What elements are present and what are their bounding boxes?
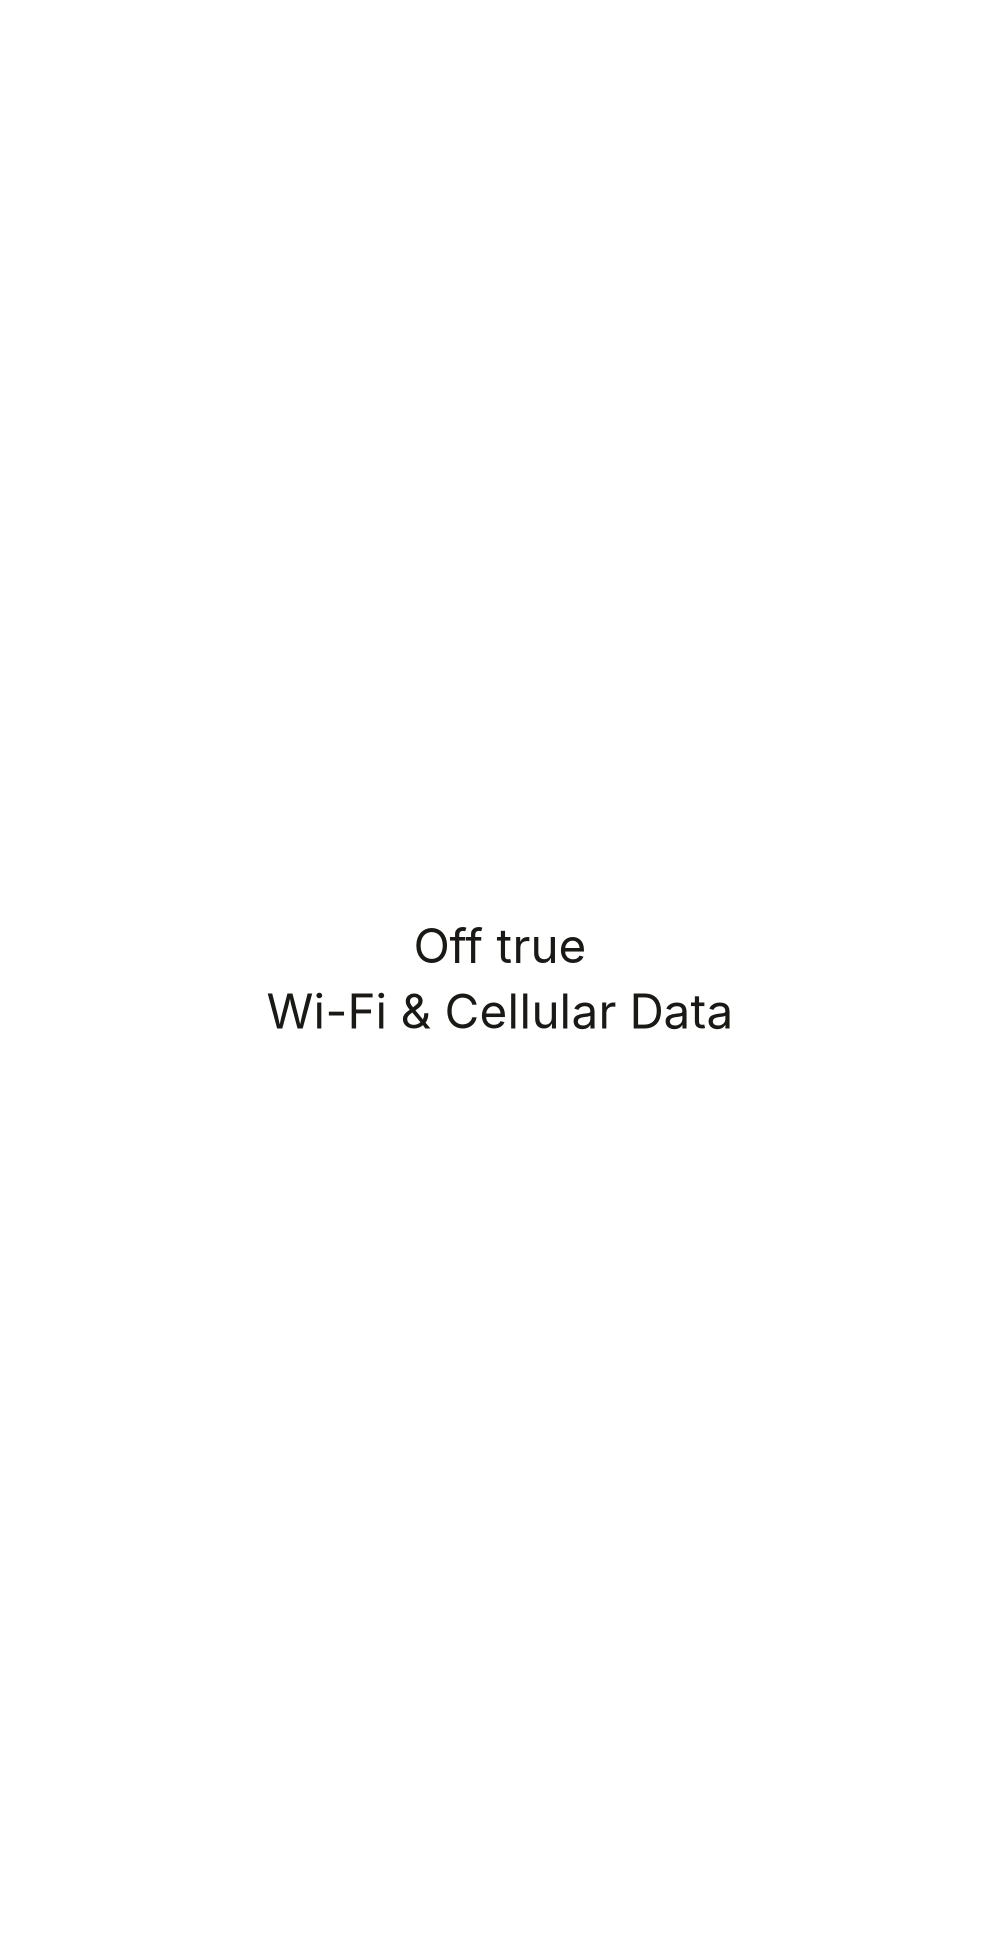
staticText: Wi-Fi & Cellular Data xyxy=(266,982,733,1040)
staticText: Off true xyxy=(413,917,586,974)
